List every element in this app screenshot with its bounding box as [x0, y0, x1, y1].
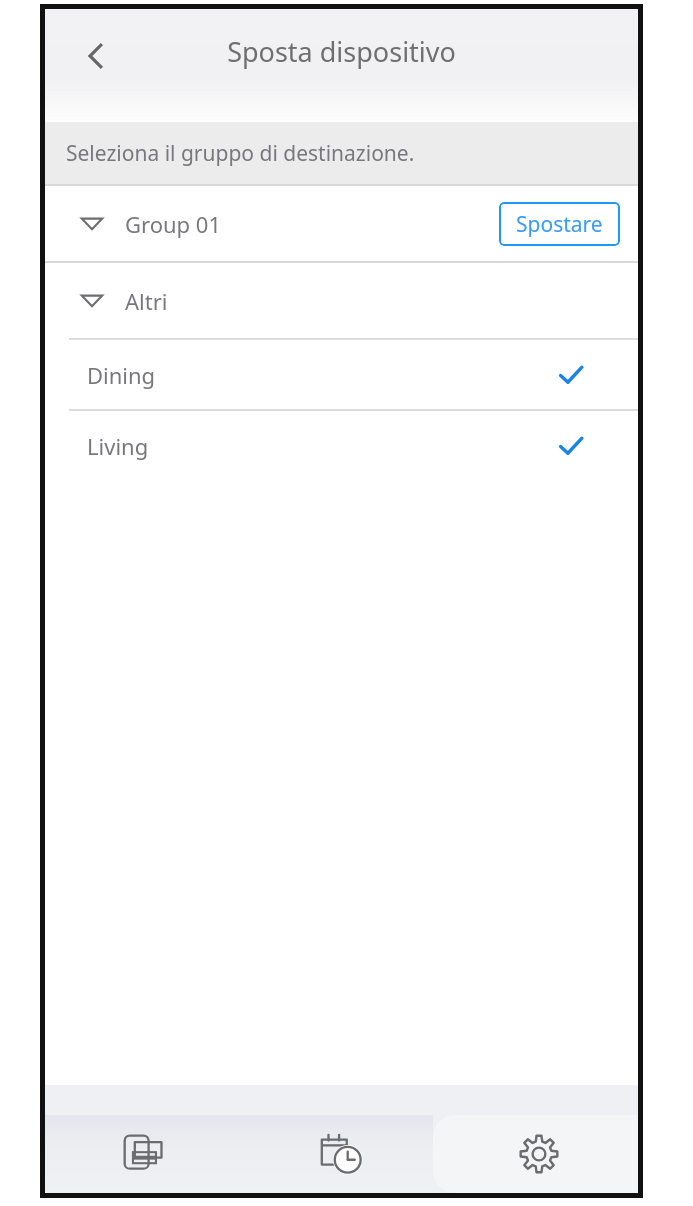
- staticText: Sposta dispositivo: [45, 33, 638, 70]
- button[interactable]: Settings: [440, 1115, 638, 1193]
- button[interactable]: Living: [45, 411, 638, 480]
- staticText: Group 01: [125, 209, 221, 239]
- button[interactable]: Back: [65, 25, 127, 87]
- button[interactable]: Group 01: [45, 186, 638, 261]
- button[interactable]: Spostare: [499, 202, 620, 246]
- staticText: Altri: [125, 286, 168, 316]
- button[interactable]: Devices: [45, 1115, 242, 1193]
- button[interactable]: Altri: [45, 263, 638, 338]
- button[interactable]: Schedule: [242, 1115, 440, 1193]
- staticText: Dining: [87, 360, 156, 390]
- button[interactable]: Dining: [45, 340, 638, 409]
- staticText: Spostare: [516, 210, 603, 239]
- staticText: Seleziona il gruppo di destinazione.: [66, 139, 415, 168]
- staticText: Living: [87, 431, 149, 461]
